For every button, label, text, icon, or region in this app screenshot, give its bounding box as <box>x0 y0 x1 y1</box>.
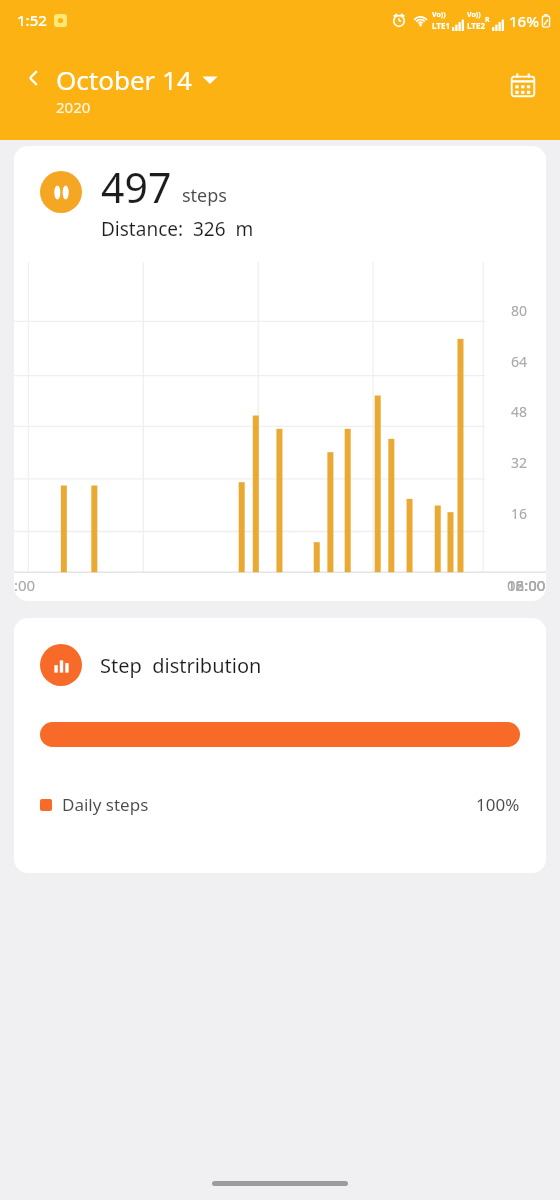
staticText: 80 <box>511 301 528 320</box>
staticText: 64 <box>511 352 528 371</box>
staticText: 18:00 <box>507 575 546 595</box>
staticText: Daily steps <box>62 793 149 816</box>
staticText: Vo)) <box>467 10 481 20</box>
staticText: 06:00 <box>507 575 546 595</box>
staticText: 48 <box>511 402 528 421</box>
button[interactable]: Back <box>18 62 50 94</box>
button[interactable]: October 14 <box>56 62 218 117</box>
staticText: October 14 <box>56 62 192 97</box>
staticText: 497 <box>101 159 172 215</box>
button[interactable]: 497 <box>14 146 546 601</box>
staticText: 32 <box>511 453 528 472</box>
staticText: 2020 <box>56 97 91 117</box>
staticText: LTE2 <box>467 20 485 31</box>
staticText: 12:00 <box>507 575 546 595</box>
staticText: R <box>485 15 490 25</box>
staticText: 16 <box>511 504 528 523</box>
staticText: steps <box>182 183 227 208</box>
staticText: 1:52 <box>17 10 47 30</box>
staticText: LTE1 <box>432 20 450 31</box>
staticText: Distance: 326 m <box>101 216 254 242</box>
staticText: Vo)) <box>432 10 446 20</box>
staticText: 100% <box>476 793 520 816</box>
button[interactable]: Step distribution <box>14 618 546 873</box>
staticText: 16% <box>509 11 539 31</box>
staticText: :00 <box>14 575 36 595</box>
button[interactable]: Calendar <box>502 64 544 106</box>
staticText: Step distribution <box>100 652 262 679</box>
